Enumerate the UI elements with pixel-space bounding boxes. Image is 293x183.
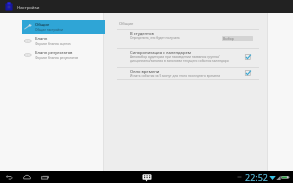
staticText: Настройки — [17, 4, 40, 10]
button[interactable]: Общие — [22, 20, 105, 34]
staticText: Общие настройки — [35, 28, 64, 32]
staticText: Окно времени — [130, 69, 160, 75]
button[interactable]: Toggle setting — [243, 52, 252, 61]
staticText: Общие — [119, 21, 134, 27]
staticText: Синхронизация с календарем — [130, 50, 191, 56]
staticText: Определить, кто будет получать — [130, 36, 231, 40]
button[interactable]: Бланк — [22, 34, 105, 48]
button[interactable]: Recent apps — [39, 171, 51, 183]
staticText: Выбор — [223, 36, 234, 41]
button[interactable]: Back — [3, 171, 15, 183]
staticText: Бланк — [35, 36, 48, 42]
staticText: 22:52 — [245, 171, 269, 183]
staticText: Искать события за 5 минут для этого посл… — [130, 74, 231, 78]
button[interactable]: Выбор — [222, 36, 253, 41]
staticText: В студентов — [130, 31, 154, 37]
staticText: Формат бланка оценок — [35, 42, 71, 46]
button[interactable]: App icon — [5, 2, 13, 11]
button[interactable]: Toggle setting — [243, 68, 252, 77]
staticText: Бланк результатов — [35, 50, 73, 56]
staticText: Общие — [35, 22, 50, 28]
staticText: Формат бланка результатов — [35, 56, 79, 60]
button[interactable]: Keyboard — [141, 172, 152, 183]
button[interactable]: Home — [21, 171, 33, 183]
staticText: Автовыбор аудитории при нахождении назва… — [130, 55, 231, 63]
button[interactable]: Бланк результатов — [22, 48, 105, 62]
